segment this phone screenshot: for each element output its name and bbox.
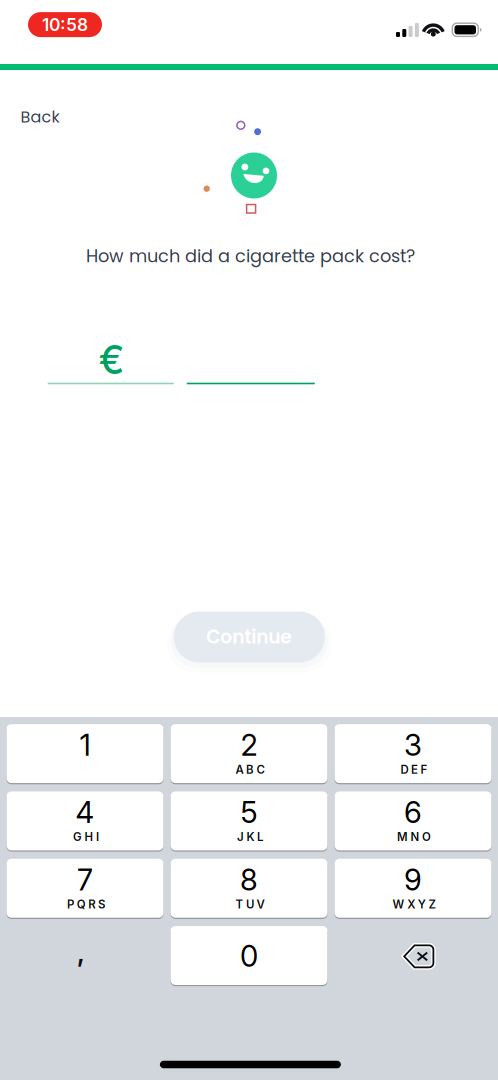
staticText: 8	[240, 862, 258, 897]
staticText: 2	[240, 727, 257, 763]
staticText: MNO	[397, 830, 431, 844]
staticText: 1	[79, 727, 90, 763]
staticText: GHI	[73, 830, 99, 844]
staticText: 10:58	[42, 14, 88, 35]
button[interactable]: Continue	[174, 611, 325, 662]
staticText: 5	[240, 795, 257, 830]
button[interactable]: Back	[20, 99, 90, 135]
button[interactable]: 1	[6, 724, 163, 783]
staticText: How much did a cigarette pack cost?	[86, 244, 415, 268]
staticText: TUV	[235, 897, 265, 911]
button[interactable]: 4	[6, 791, 163, 850]
button[interactable]: 6	[334, 791, 491, 850]
button[interactable]: ,	[6, 926, 163, 985]
staticText: 0	[240, 938, 258, 974]
staticText: 4	[75, 795, 94, 830]
button[interactable]: 9	[334, 859, 491, 918]
staticText: 7	[77, 862, 93, 897]
button[interactable]: 0	[170, 926, 327, 985]
staticText: Back	[20, 106, 59, 128]
staticText: WXYZ	[393, 897, 435, 911]
button[interactable]: 3	[334, 724, 491, 783]
staticText: ABC	[235, 763, 265, 777]
button[interactable]: 5	[170, 791, 327, 850]
staticText: 9	[404, 862, 422, 897]
staticText: Continue	[206, 624, 292, 650]
button[interactable]: Delete	[334, 926, 491, 985]
staticText: JKL	[237, 830, 263, 844]
button[interactable]: 7	[6, 859, 163, 918]
button[interactable]: 2	[170, 724, 327, 783]
staticText: 3	[404, 727, 422, 763]
button[interactable]: 8	[170, 859, 327, 918]
staticText: DEF	[400, 763, 428, 777]
staticText: PQRS	[67, 897, 105, 911]
staticText: ,	[77, 936, 85, 968]
staticText: 6	[404, 795, 422, 830]
staticText: €	[99, 337, 124, 383]
